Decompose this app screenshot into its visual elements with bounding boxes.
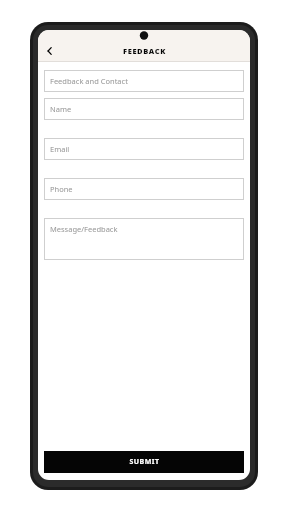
button[interactable]: Phone: [44, 178, 244, 200]
button[interactable]: Email: [44, 138, 244, 160]
staticText: Email: [50, 144, 70, 154]
staticText: SUBMIT: [129, 457, 160, 467]
staticText: Message/Feedback: [50, 224, 118, 234]
staticText: FEEDBACK: [123, 46, 166, 56]
staticText: Name: [50, 104, 72, 114]
button[interactable]: Feedback and Contact: [44, 70, 244, 92]
button[interactable]: Back: [38, 40, 62, 62]
staticText: Feedback and Contact: [50, 76, 128, 86]
button[interactable]: Message/Feedback: [44, 218, 244, 260]
button[interactable]: Name: [44, 98, 244, 120]
staticText: Phone: [50, 184, 73, 194]
button[interactable]: SUBMIT: [44, 451, 244, 473]
